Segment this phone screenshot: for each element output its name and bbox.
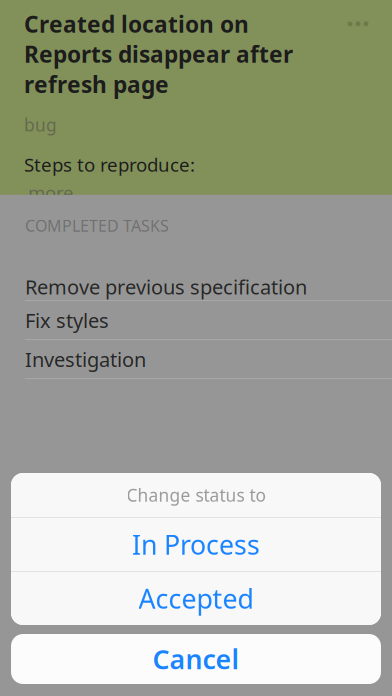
staticText: Created location on Reports disappear af… xyxy=(24,9,293,99)
staticText: Remove previous specification xyxy=(25,274,307,300)
staticText: Cancel xyxy=(152,641,239,677)
staticText: more... xyxy=(28,180,89,205)
staticText: bug xyxy=(24,113,57,136)
staticText: Accepted xyxy=(138,581,253,616)
button[interactable]: Investigation xyxy=(0,340,392,378)
staticText: TRACKER.REVIEW 02:05 / - xyxy=(27,230,221,251)
staticText: Fix styles xyxy=(25,307,109,333)
button[interactable]: More options xyxy=(336,9,380,39)
staticText: COMPLETED TASKS xyxy=(25,215,169,236)
button[interactable]: Remove previous specification xyxy=(0,236,392,300)
staticText: Investigation xyxy=(25,346,146,372)
staticText: Steps to reproduce: xyxy=(24,152,195,177)
button[interactable]: Accepted xyxy=(11,572,381,625)
button[interactable]: In Process xyxy=(11,518,381,571)
button[interactable]: Cancel xyxy=(11,634,381,684)
staticText: In Process xyxy=(132,527,260,562)
staticText: Change status to xyxy=(126,483,265,506)
button[interactable]: Fix styles xyxy=(0,301,392,339)
